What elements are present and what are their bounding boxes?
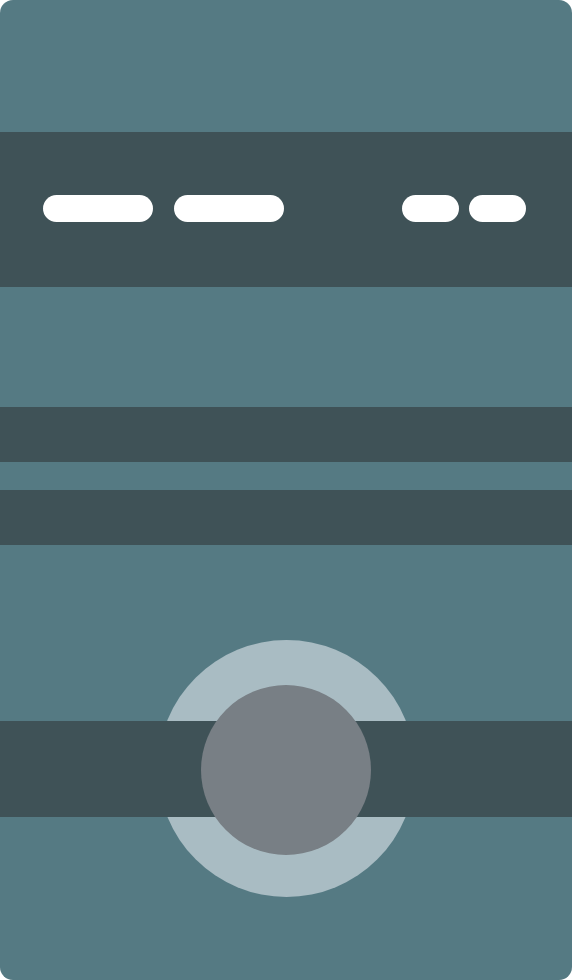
button[interactable]: Create new item xyxy=(201,685,371,855)
button[interactable]: More options xyxy=(469,195,526,222)
button[interactable]: Navigation menu xyxy=(43,195,153,222)
button[interactable]: Library tab xyxy=(286,721,429,817)
button[interactable]: Screen title xyxy=(174,195,284,222)
button[interactable]: Explore tab xyxy=(143,721,286,817)
button[interactable]: Search xyxy=(402,195,459,222)
